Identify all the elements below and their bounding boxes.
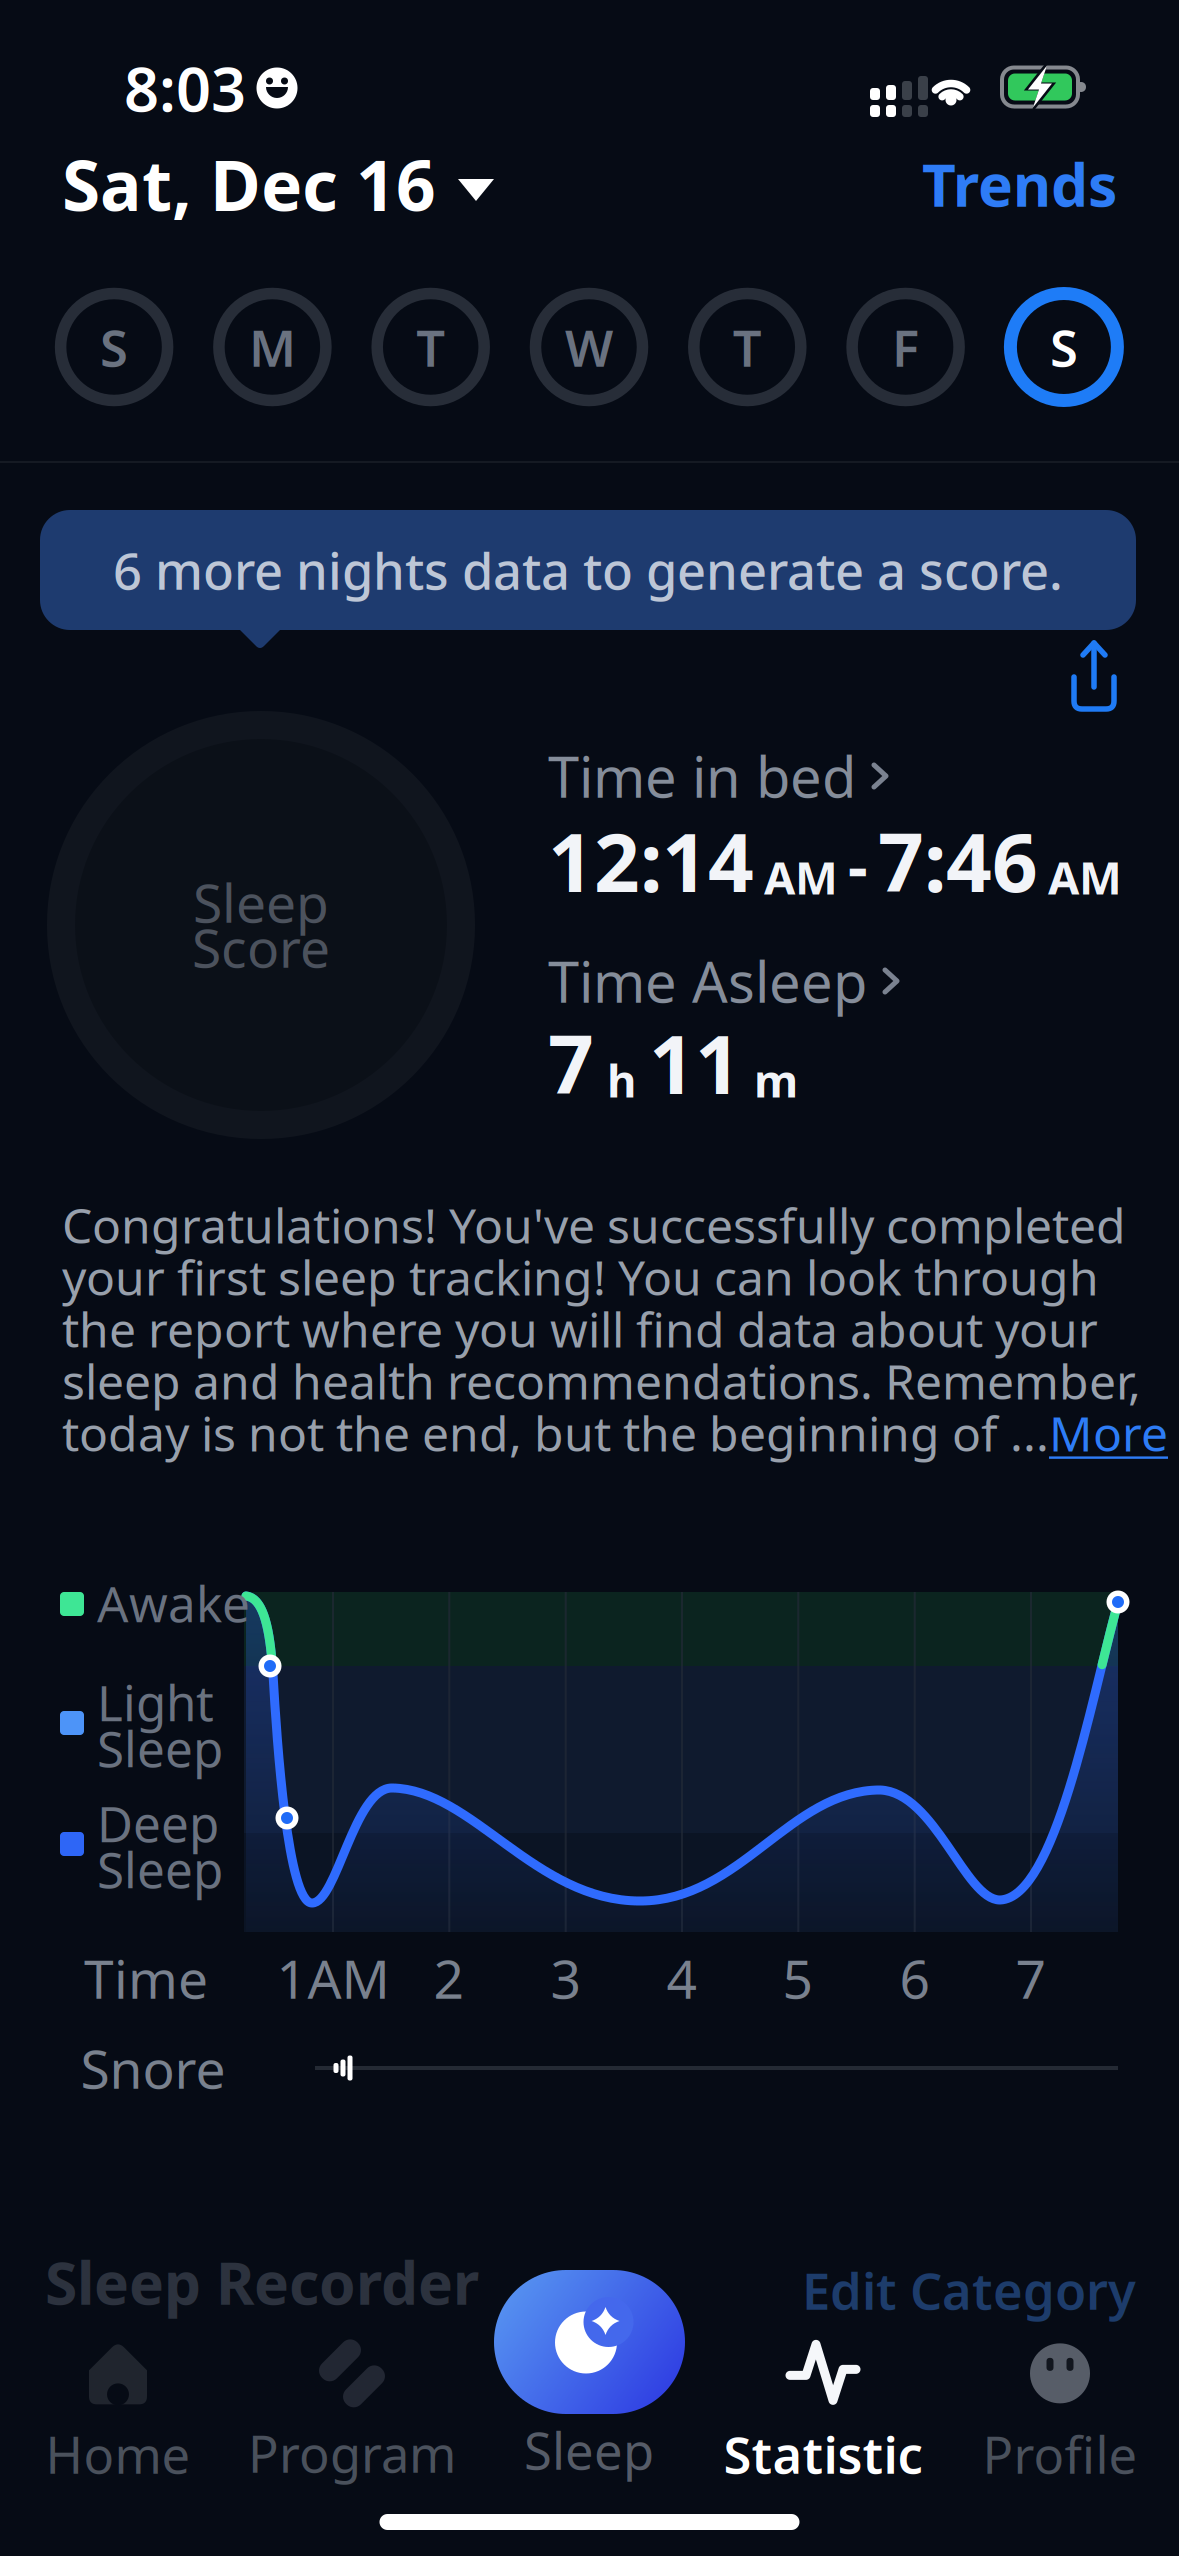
staticText: 6 [899, 1943, 930, 2013]
staticText: your first sleep tracking! You can look … [62, 1245, 1099, 1309]
button[interactable]: S [1010, 293, 1117, 400]
staticText: Statistic [723, 2420, 922, 2488]
staticText: today is not the end, but the beginning … [62, 1401, 1049, 1465]
staticText: 7 [548, 1010, 594, 1116]
staticText: Profile [982, 2420, 1137, 2488]
staticText: Congratulations! You've successfully com… [62, 1193, 1126, 1257]
staticText: 2 [433, 1943, 464, 2013]
button[interactable]: Profile [960, 2340, 1160, 2490]
staticText: Sat, Dec 16 [62, 138, 436, 230]
staticText: AM [1048, 847, 1122, 907]
button[interactable]: T [694, 293, 801, 400]
staticText: Home [45, 2420, 190, 2488]
button[interactable]: Program [242, 2340, 462, 2490]
staticText: 3 [550, 1943, 581, 2013]
button[interactable]: W [535, 293, 642, 400]
button[interactable]: S [61, 293, 168, 400]
staticText: F [892, 313, 919, 381]
staticText: m [754, 1050, 798, 1110]
button[interactable]: Time Asleep [548, 944, 899, 1018]
button[interactable]: M [219, 293, 326, 400]
staticText: Sleep Recorder [45, 2243, 479, 2321]
staticText: S [1050, 313, 1078, 381]
staticText: Light [97, 1669, 214, 1735]
staticText: AM [764, 847, 838, 907]
staticText: Snore [80, 2033, 225, 2103]
button[interactable] [494, 2270, 685, 2414]
staticText: Sleep [97, 1715, 223, 1781]
button[interactable]: T [377, 293, 484, 400]
staticText: W [565, 313, 613, 381]
button[interactable] [1064, 635, 1124, 719]
button[interactable]: More [1049, 1401, 1168, 1465]
staticText: More [1049, 1401, 1168, 1465]
button[interactable]: Sat, Dec 16 [62, 138, 494, 230]
staticText: - [848, 825, 868, 906]
staticText: 8:03 [124, 47, 246, 129]
staticText: 7:46 [878, 808, 1038, 914]
button[interactable]: Sleep [524, 2416, 654, 2484]
staticText: sleep and health recommendations. Rememb… [62, 1349, 1141, 1413]
staticText: the report where you will find data abou… [62, 1297, 1098, 1361]
staticText: 12:14 [548, 808, 754, 914]
staticText: Trends [922, 145, 1117, 223]
staticText: Edit Category [802, 2256, 1136, 2324]
staticText: Time in bed [548, 739, 856, 813]
button[interactable]: Edit Category [802, 2256, 1136, 2324]
staticText: Sleep [193, 867, 329, 937]
staticText: Sleep [524, 2416, 654, 2484]
staticText: M [249, 313, 296, 381]
staticText: Deep [97, 1790, 219, 1856]
staticText: 1AM [276, 1943, 389, 2013]
staticText: Sleep [97, 1836, 223, 1902]
staticText: Score [192, 912, 330, 982]
staticText: Program [248, 2419, 456, 2487]
button[interactable]: Time in bed [548, 739, 888, 813]
staticText: T [416, 313, 445, 381]
staticText: Time [84, 1943, 208, 2013]
staticText: 4 [666, 1943, 697, 2013]
staticText: T [733, 313, 762, 381]
staticText: S [100, 313, 128, 381]
staticText: h [607, 1050, 636, 1110]
staticText: 5 [782, 1943, 813, 2013]
button[interactable]: Home [18, 2340, 218, 2490]
staticText: 7 [1015, 1943, 1046, 2013]
button[interactable]: Trends [922, 145, 1117, 223]
button[interactable]: F [852, 293, 959, 400]
staticText: Awake [97, 1570, 250, 1636]
staticText: 11 [649, 1010, 741, 1116]
staticText: 6 more nights data to generate a score. [113, 536, 1063, 604]
button[interactable]: Statistic [713, 2340, 933, 2490]
staticText: Time Asleep [548, 944, 867, 1018]
